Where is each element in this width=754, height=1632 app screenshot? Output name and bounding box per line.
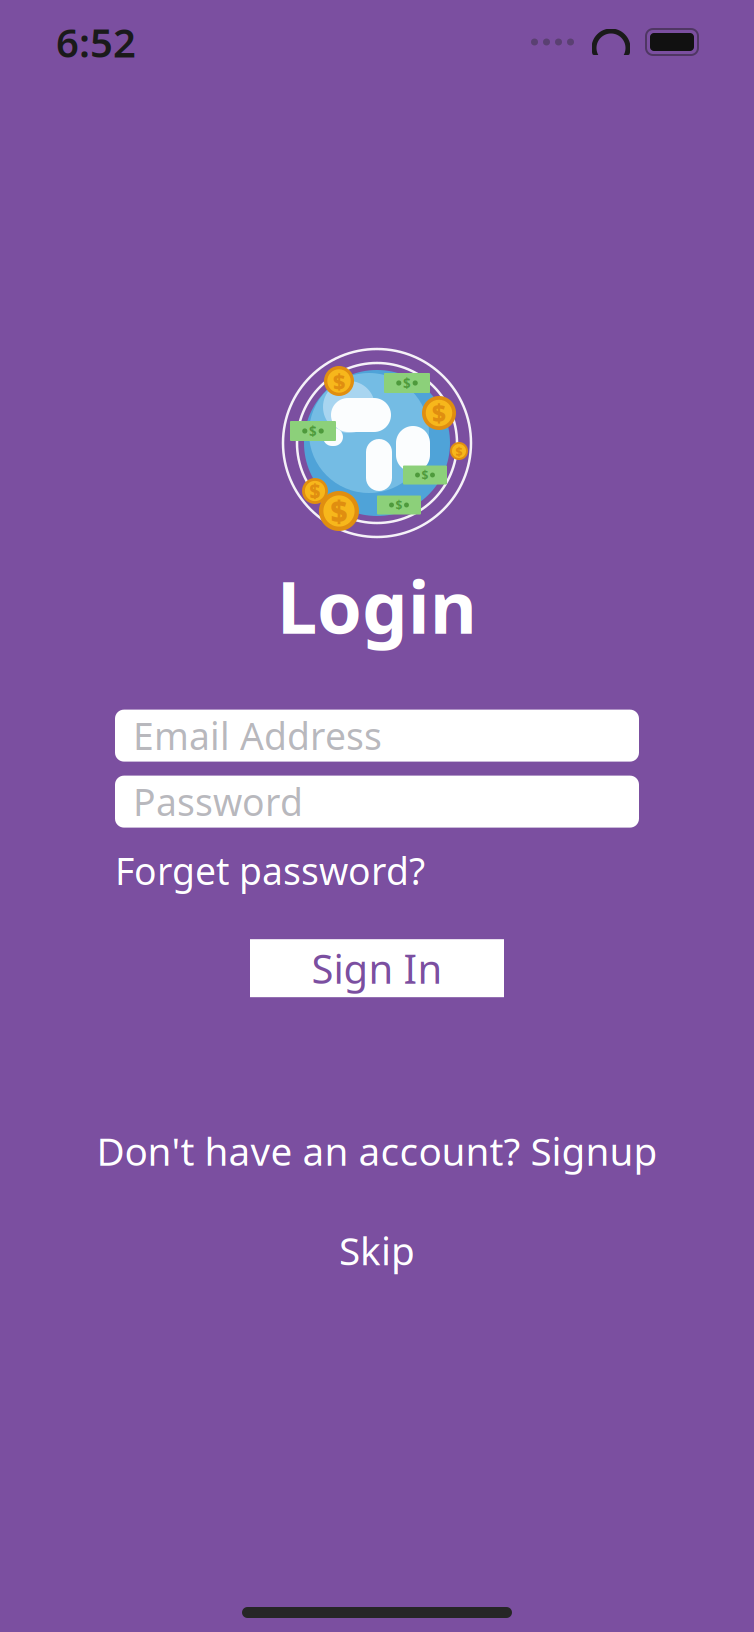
button[interactable]: Sign In [250,939,504,997]
staticText: $ [455,443,462,459]
staticText: $ [330,491,347,530]
staticText: Forget password? [115,846,425,895]
staticText: Login [277,558,477,654]
staticText: Password [133,777,303,826]
staticText: $ [395,497,402,513]
staticText: $ [309,422,317,440]
staticText: $ [309,479,320,503]
staticText: $ [421,467,428,483]
staticText: $ [333,367,345,395]
button[interactable]: Email Address [115,710,639,762]
staticText: 6:52 [56,15,136,68]
button[interactable]: Forget password? [115,846,425,895]
button[interactable]: Don't have an account? Signup [76,1117,677,1184]
staticText: Don't have an account? Signup [96,1125,657,1176]
staticText: Skip [339,1224,415,1276]
button[interactable]: Password [115,776,639,828]
staticText: Email Address [133,711,382,760]
staticText: $ [403,374,411,392]
button[interactable]: Skip [315,1216,439,1284]
staticText: $ [432,397,446,429]
staticText: Sign In [311,942,442,995]
